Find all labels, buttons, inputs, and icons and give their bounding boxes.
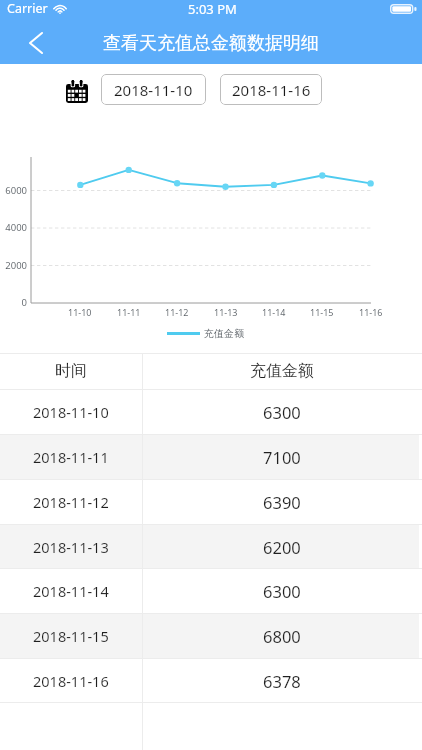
button[interactable]: Back [15, 22, 57, 64]
staticText: 2018-11-10 [114, 80, 193, 100]
button[interactable]: 2018-11-14 [0, 568, 422, 613]
staticText: 2018-11-16 [33, 671, 109, 691]
button[interactable]: 2018-11-10 [101, 74, 206, 105]
staticText: 2018-11-13 [33, 537, 109, 557]
staticText: 2000 [5, 259, 27, 272]
staticText: 充值金额 [204, 327, 244, 340]
staticText: 2018-11-10 [33, 402, 109, 422]
staticText: 11-13 [214, 306, 238, 318]
staticText: 6800 [263, 625, 301, 647]
staticText: 6000 [5, 184, 27, 197]
button[interactable]: 2018-11-11 [0, 434, 422, 479]
staticText: Carrier [7, 0, 48, 17]
staticText: 充值金额 [250, 361, 314, 381]
button[interactable]: 2018-11-16 [0, 658, 422, 703]
staticText: 2018-11-11 [33, 447, 109, 467]
staticText: 时间 [55, 361, 87, 381]
staticText: 查看天充值总金额数据明细 [103, 32, 319, 55]
staticText: 11-14 [262, 306, 286, 318]
button[interactable]: 2018-11-16 [220, 74, 322, 105]
staticText: 6300 [263, 401, 301, 423]
staticText: 6200 [263, 536, 301, 558]
staticText: 11-12 [165, 306, 189, 318]
staticText: 4000 [5, 221, 27, 234]
staticText: 6378 [263, 670, 301, 692]
button[interactable]: 2018-11-15 [0, 613, 422, 658]
staticText: 2018-11-12 [33, 492, 109, 512]
staticText: 2018-11-16 [232, 80, 311, 100]
button[interactable]: 时间 [0, 353, 422, 389]
staticText: 6300 [263, 580, 301, 602]
button[interactable]: 2018-11-12 [0, 479, 422, 524]
staticText: 6390 [263, 491, 301, 513]
staticText: 11-10 [68, 306, 92, 318]
staticText: 2018-11-14 [33, 581, 109, 601]
staticText: 11-15 [310, 306, 334, 318]
button[interactable]: 2018-11-13 [0, 524, 422, 569]
button[interactable]: Select date [66, 80, 88, 103]
staticText: 5:03 PM [188, 0, 237, 18]
staticText: 11-11 [117, 306, 141, 318]
staticText: 7100 [263, 446, 301, 468]
staticText: 11-16 [359, 306, 383, 318]
staticText: 0 [21, 296, 27, 309]
button[interactable]: 2018-11-10 [0, 389, 422, 434]
staticText: 2018-11-15 [33, 626, 109, 646]
